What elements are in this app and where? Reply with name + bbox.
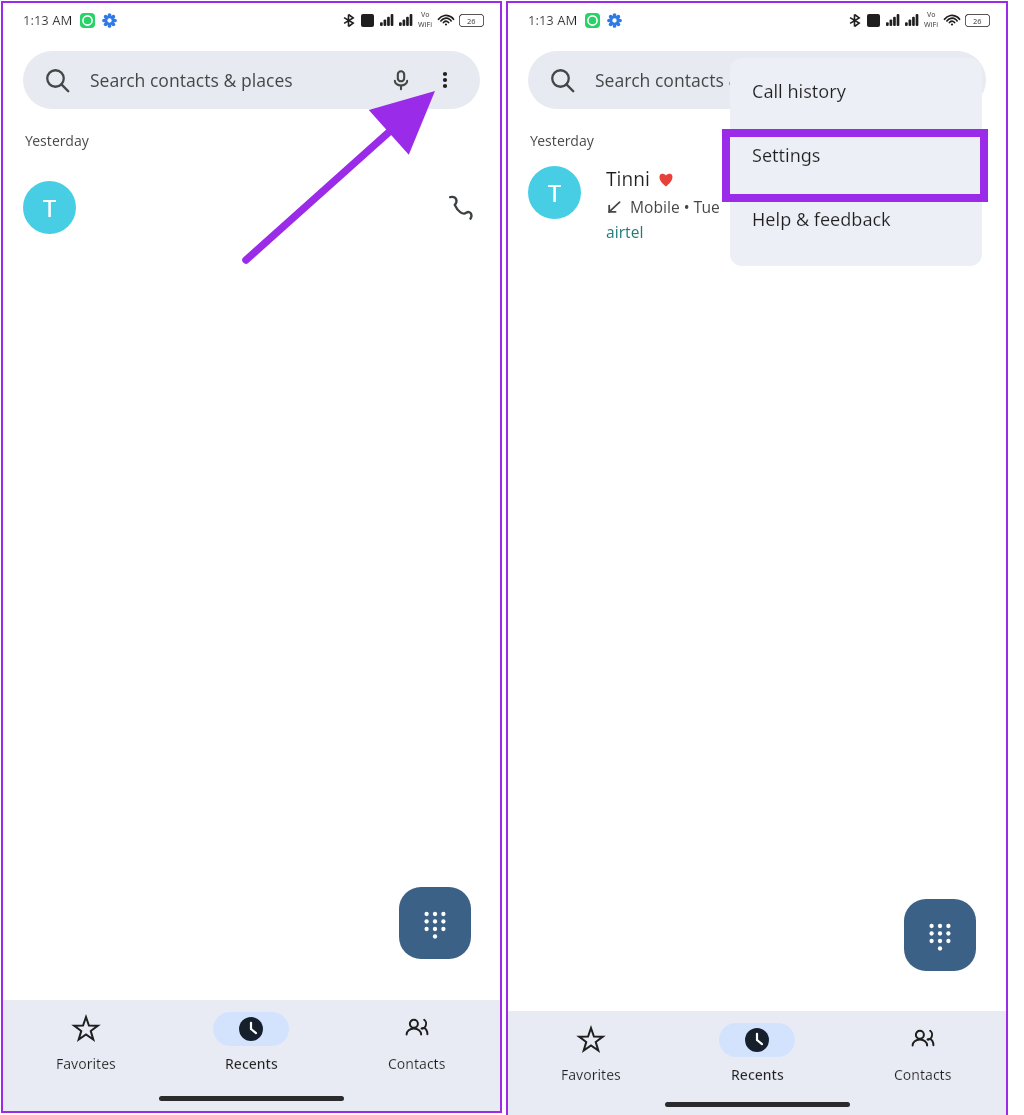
button[interactable]: Voice search [384,63,418,97]
staticText: Favorites [56,1054,116,1073]
button[interactable]: Favorites [3,1008,168,1073]
button[interactable]: T [508,166,1006,242]
staticText: Search contacts & places [595,68,968,92]
button[interactable]: Settings [730,124,982,186]
staticText: WiFi [924,20,939,30]
staticText: Help & feedback [752,207,891,232]
staticText: Recents [225,1054,278,1073]
staticText: Yesterday [530,131,594,150]
button[interactable]: Search contacts & places [23,51,480,109]
staticText: 26 [467,16,476,26]
staticText: Settings [752,143,821,168]
button[interactable]: Contacts [334,1008,500,1073]
staticText: 1:13 AM [528,11,578,29]
staticText: Yesterday [25,131,89,150]
button[interactable]: Favorites [508,1019,674,1084]
staticText: Vo [927,10,936,20]
staticText: Contacts [388,1054,446,1073]
button[interactable]: Recents [674,1019,840,1084]
staticText: 26 [973,16,982,26]
button[interactable]: Recents [168,1008,334,1073]
staticText: Favorites [561,1065,621,1084]
button[interactable]: Call history [730,58,982,124]
button[interactable]: Search contacts & places [528,51,986,109]
staticText: Mobile • Tue [630,196,720,217]
staticText: T [548,177,562,209]
staticText: Vo [421,10,430,20]
button[interactable]: Dialpad [399,887,471,959]
staticText: WiFi [418,20,433,30]
staticText: Contacts [894,1065,952,1084]
staticText: airtel [606,221,644,242]
button[interactable]: Help & feedback [730,186,982,252]
button[interactable]: Contacts [840,1019,1006,1084]
button[interactable]: Call [440,187,480,227]
staticText: Call history [752,79,846,104]
staticText: T [43,192,57,224]
button[interactable]: T [3,172,500,242]
button[interactable]: Dialpad [904,899,976,971]
staticText: Recents [731,1065,784,1084]
staticText: Search contacts & places [90,68,376,92]
staticText: 1:13 AM [23,11,73,29]
staticText: Tinni [606,166,650,192]
button[interactable]: More options [428,63,462,97]
